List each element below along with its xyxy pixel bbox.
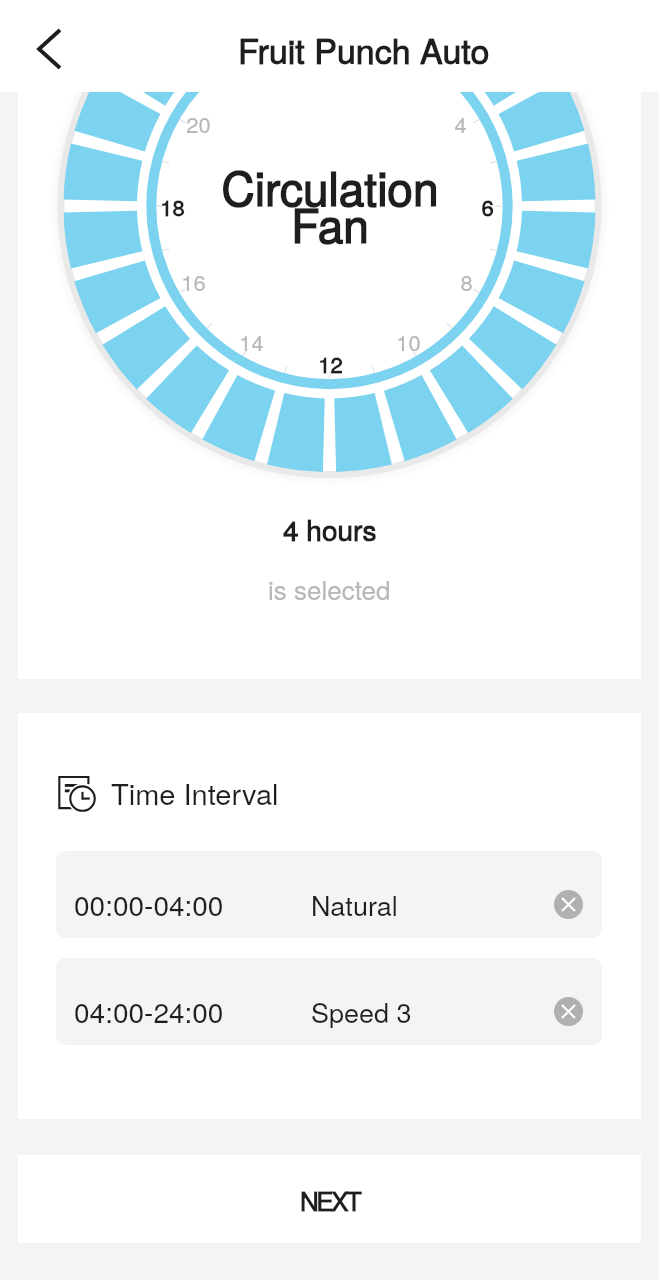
- staticText: 14: [239, 326, 264, 358]
- staticText: 04:00-24:00: [74, 991, 224, 1031]
- staticText: 12: [318, 348, 343, 380]
- staticText: 20: [186, 108, 211, 140]
- staticText: 6: [481, 191, 494, 223]
- button[interactable]: 00:00-04:00: [56, 851, 602, 938]
- button[interactable]: Remove interval: [554, 890, 583, 919]
- staticText: Natural: [311, 885, 398, 924]
- staticText: is selected: [268, 570, 391, 607]
- staticText: Fruit Punch Auto: [238, 25, 490, 74]
- button[interactable]: NEXT: [18, 1155, 641, 1243]
- staticText: NEXT: [300, 1181, 360, 1218]
- staticText: Speed 3: [311, 992, 412, 1031]
- staticText: 16: [181, 266, 206, 298]
- staticText: 00:00-04:00: [74, 884, 224, 924]
- staticText: 18: [160, 191, 185, 223]
- staticText: 10: [396, 326, 421, 358]
- staticText: 4: [454, 108, 467, 140]
- staticText: 4 hours: [283, 509, 377, 549]
- button[interactable]: 04:00-24:00: [56, 958, 602, 1045]
- staticText: Time Interval: [111, 772, 279, 814]
- button[interactable]: Back: [25, 24, 74, 74]
- staticText: Fan: [291, 190, 369, 256]
- staticText: Circulation: [221, 153, 439, 219]
- staticText: 8: [460, 266, 473, 298]
- button[interactable]: Remove interval: [554, 997, 583, 1026]
